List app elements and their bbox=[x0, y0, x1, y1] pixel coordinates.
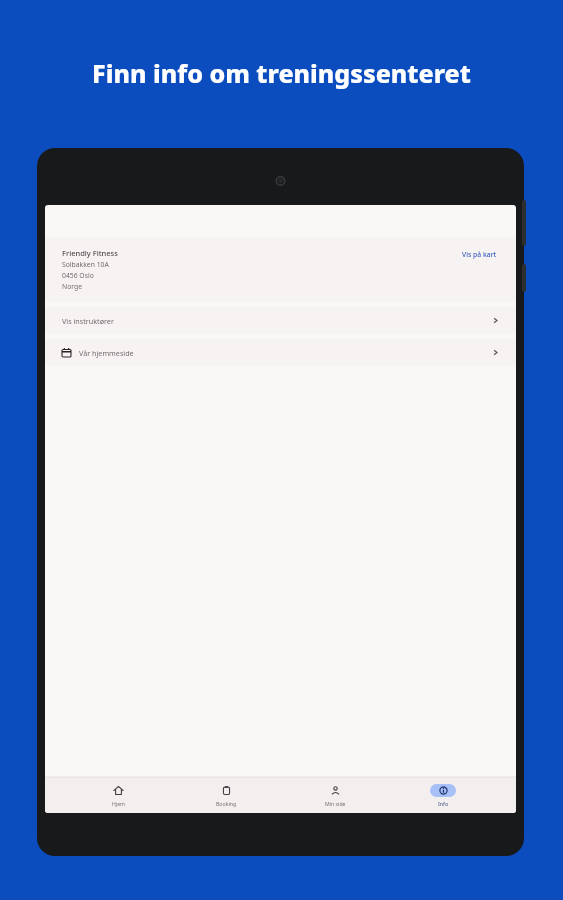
staticText: Vis instruktører bbox=[62, 316, 492, 326]
other: Hjem bbox=[114, 786, 123, 795]
staticText: Info bbox=[438, 800, 449, 807]
other: Booking bbox=[222, 786, 231, 795]
button[interactable]: Friendly Fitness bbox=[45, 237, 516, 302]
button[interactable]: Min side bbox=[300, 777, 370, 813]
staticText: Finn info om treningssenteret bbox=[0, 56, 563, 90]
staticText: Booking bbox=[216, 800, 237, 807]
staticText: Friendly Fitness bbox=[62, 248, 118, 258]
other: Min side bbox=[331, 786, 340, 795]
staticText: Vis på kart bbox=[462, 250, 497, 259]
staticText: Norge bbox=[62, 282, 83, 291]
button[interactable]: Hjem bbox=[83, 777, 153, 813]
staticText: 0456 Oslo bbox=[62, 271, 94, 280]
button[interactable]: Vår hjemmeside bbox=[45, 339, 516, 366]
button[interactable]: Vis instruktører bbox=[45, 307, 516, 334]
staticText: Vår hjemmeside bbox=[79, 348, 492, 358]
staticText: Solbakken 10A bbox=[62, 260, 109, 269]
button[interactable]: Vis på kart bbox=[460, 248, 499, 261]
other: Info bbox=[439, 786, 448, 795]
button[interactable]: Info bbox=[408, 777, 478, 813]
staticText: Min side bbox=[325, 800, 346, 807]
button[interactable]: Booking bbox=[191, 777, 261, 813]
staticText: Hjem bbox=[112, 800, 125, 807]
